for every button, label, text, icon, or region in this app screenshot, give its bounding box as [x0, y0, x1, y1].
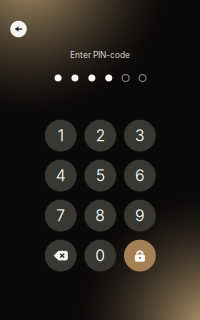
button[interactable]: Unlock [124, 240, 156, 271]
staticText: 2 [96, 126, 105, 145]
staticText: 3 [135, 126, 145, 145]
button[interactable]: 9 [124, 200, 156, 231]
button[interactable]: Delete [45, 240, 77, 271]
button[interactable]: 8 [84, 200, 116, 231]
button[interactable]: 3 [124, 120, 156, 151]
staticText: 5 [96, 166, 105, 185]
staticText: 1 [58, 126, 64, 145]
staticText: 0 [95, 246, 105, 265]
button[interactable]: 4 [45, 160, 77, 191]
button[interactable]: 5 [84, 160, 116, 191]
button[interactable]: 1 [45, 120, 77, 151]
button[interactable]: 7 [45, 200, 77, 231]
staticText: 9 [135, 206, 145, 225]
button[interactable]: 6 [124, 160, 156, 191]
button[interactable]: Back [10, 21, 27, 37]
staticText: 7 [56, 206, 65, 225]
staticText: 6 [135, 166, 145, 185]
staticText: Enter PIN-code [70, 50, 130, 60]
button[interactable]: 2 [84, 120, 116, 151]
staticText: 4 [56, 166, 66, 185]
staticText: 8 [95, 206, 105, 225]
button[interactable]: 0 [84, 240, 116, 271]
